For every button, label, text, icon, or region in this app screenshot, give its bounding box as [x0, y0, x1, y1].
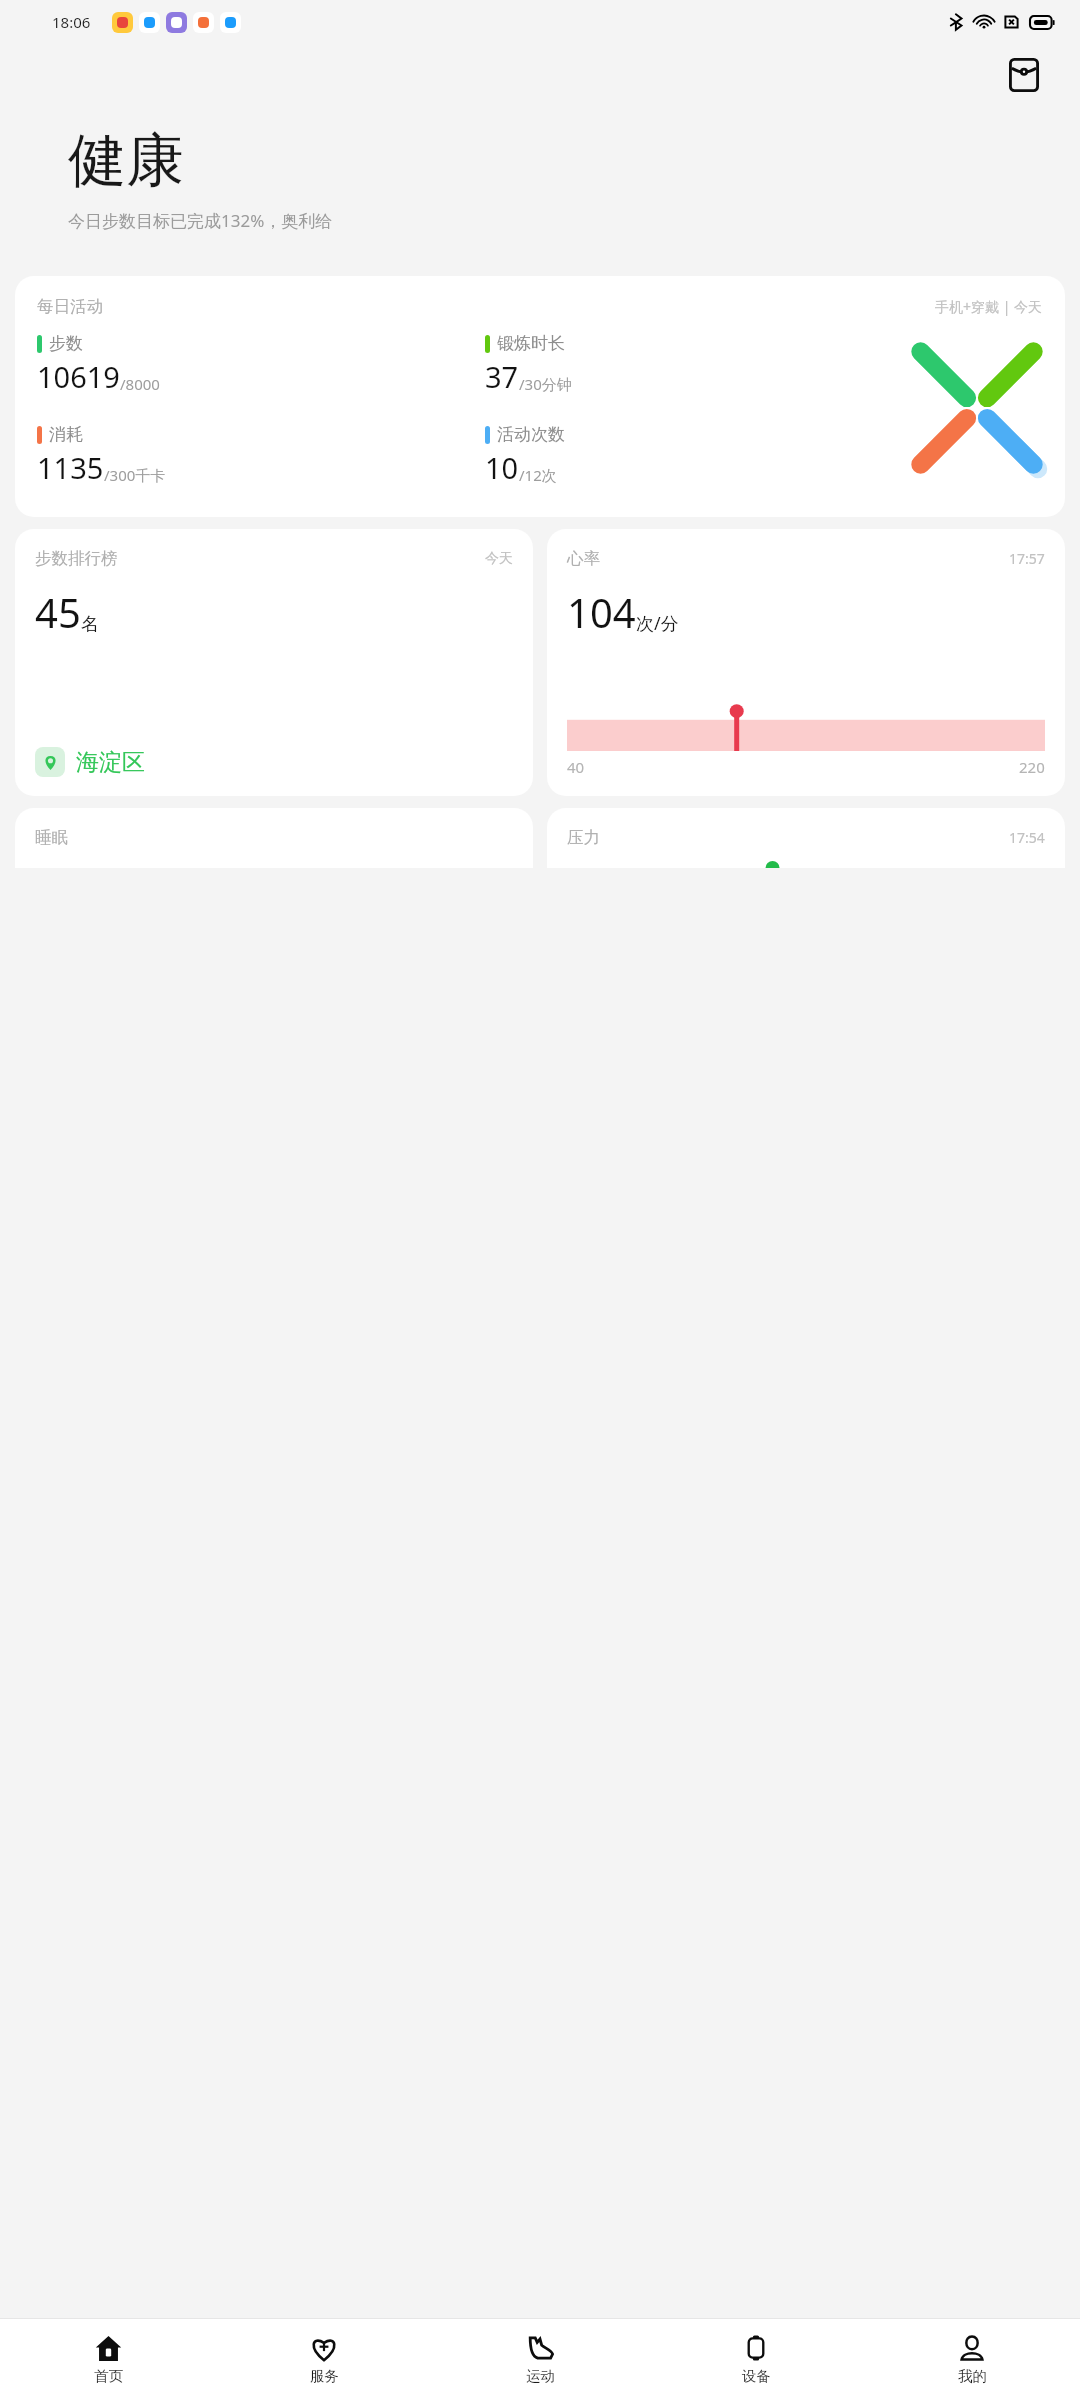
staticText: 名: [81, 613, 99, 636]
staticText: 17:57: [1009, 549, 1045, 568]
button[interactable]: 设备: [648, 2319, 864, 2400]
staticText: 220: [1019, 757, 1045, 777]
staticText: 服务: [310, 2367, 339, 2385]
staticText: 手机+穿戴 | 今天: [935, 297, 1043, 316]
staticText: 设备: [742, 2367, 771, 2385]
button[interactable]: 服务: [216, 2319, 432, 2400]
button[interactable]: 我的: [864, 2319, 1080, 2400]
staticText: 压力: [567, 827, 600, 848]
staticText: 次/分: [636, 611, 679, 636]
staticText: 活动次数: [497, 424, 565, 445]
button[interactable]: 运动: [432, 2319, 648, 2400]
staticText: 18:06: [52, 12, 91, 32]
staticText: 45: [35, 585, 81, 639]
button[interactable]: 每日活动: [15, 276, 1065, 517]
staticText: 今天: [485, 550, 513, 568]
button[interactable]: 压力: [547, 808, 1065, 868]
staticText: /30分钟: [519, 374, 572, 394]
staticText: 步数排行榜: [35, 548, 118, 569]
staticText: 40: [567, 757, 585, 777]
staticText: 心率: [567, 548, 600, 569]
staticText: 消耗: [49, 424, 83, 445]
button[interactable]: 心率: [547, 529, 1065, 796]
staticText: 我的: [958, 2367, 987, 2385]
staticText: 今日步数目标已完成132%，奥利给: [68, 209, 333, 232]
staticText: /300千卡: [104, 465, 166, 485]
staticText: 运动: [526, 2367, 555, 2385]
staticText: 每日活动: [37, 296, 103, 317]
staticText: /12次: [519, 465, 557, 485]
button[interactable]: Messages: [1002, 53, 1046, 97]
staticText: 10: [485, 448, 519, 487]
staticText: 健康: [68, 124, 184, 197]
button[interactable]: 步数排行榜: [15, 529, 533, 796]
button[interactable]: 首页: [0, 2319, 216, 2400]
staticText: 锻炼时长: [497, 333, 565, 354]
button[interactable]: 睡眠: [15, 808, 533, 868]
staticText: 37: [485, 357, 519, 396]
staticText: 10619: [37, 357, 120, 396]
staticText: 17:54: [1009, 828, 1045, 847]
staticText: 海淀区: [76, 748, 145, 777]
staticText: 104: [567, 585, 636, 639]
staticText: 睡眠: [35, 827, 68, 848]
staticText: 步数: [49, 333, 83, 354]
staticText: 1135: [37, 448, 104, 487]
staticText: 首页: [94, 2367, 123, 2385]
staticText: /8000: [120, 374, 160, 394]
